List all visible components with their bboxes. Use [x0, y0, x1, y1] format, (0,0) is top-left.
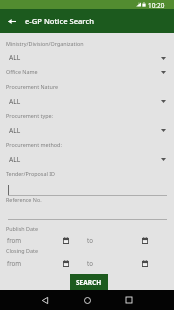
button[interactable]: ALL [0, 124, 174, 136]
button[interactable]: ALL [0, 153, 174, 165]
staticText: ALL [9, 155, 21, 164]
button[interactable]: Pick closing date [140, 235, 150, 245]
staticText: to [87, 259, 93, 267]
staticText: SEARCH [76, 278, 102, 287]
staticText: Procurement method: [6, 141, 62, 148]
button[interactable]: Pick closing date [140, 258, 150, 268]
staticText: Closing Date [6, 247, 39, 254]
staticText: Procurement Nature [6, 83, 59, 90]
button[interactable]: ALL [0, 51, 174, 63]
staticText: ALL [9, 53, 21, 62]
button[interactable]: Home [77, 290, 97, 310]
staticText: ALL [9, 97, 21, 106]
staticText: Procurement type: [6, 112, 53, 119]
staticText: Office Name [6, 68, 38, 75]
button[interactable]: ALL [0, 95, 174, 107]
staticText: Reference No. [6, 196, 42, 203]
button[interactable]: SEARCH [70, 274, 108, 290]
staticText: from [7, 259, 22, 267]
button[interactable]: Back [35, 290, 55, 310]
staticText: Ministry/Division/Organization [6, 40, 84, 47]
staticText: 10:20 [148, 1, 165, 10]
staticText: to [87, 236, 93, 244]
staticText: ALL [9, 126, 21, 135]
button[interactable]: Back [4, 13, 20, 29]
staticText: Publish Date [6, 225, 38, 232]
staticText: Tender/Proposal ID [6, 170, 55, 177]
staticText: e-GP Notice Search [25, 16, 94, 26]
staticText: from [7, 236, 22, 244]
button[interactable]: Pick publish date [61, 258, 71, 268]
button[interactable]: Recents [119, 290, 139, 310]
button[interactable]: Pick publish date [61, 235, 71, 245]
